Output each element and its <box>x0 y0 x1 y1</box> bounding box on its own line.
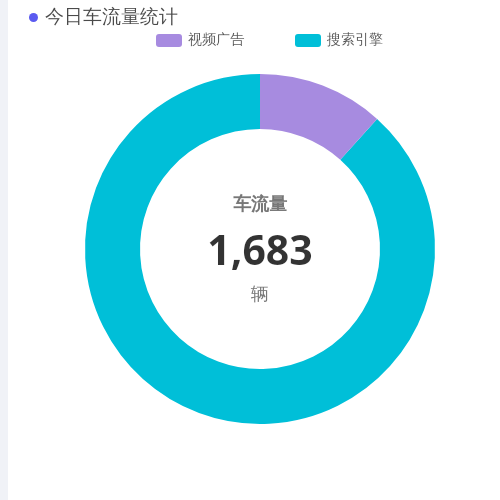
staticText: 搜索引擎 <box>327 31 383 49</box>
button[interactable]: 今日车流量统计 <box>27 4 180 30</box>
staticText: 1,683 <box>207 221 313 277</box>
staticText: 今日车流量统计 <box>45 5 178 29</box>
staticText: 车流量 <box>233 193 287 216</box>
button[interactable]: 视频广告 <box>155 29 245 51</box>
button[interactable]: 搜索引擎 <box>294 29 384 51</box>
staticText: 辆 <box>251 283 269 306</box>
staticText: 视频广告 <box>188 31 244 49</box>
button[interactable]: 车流量占比环形图 <box>85 74 435 424</box>
